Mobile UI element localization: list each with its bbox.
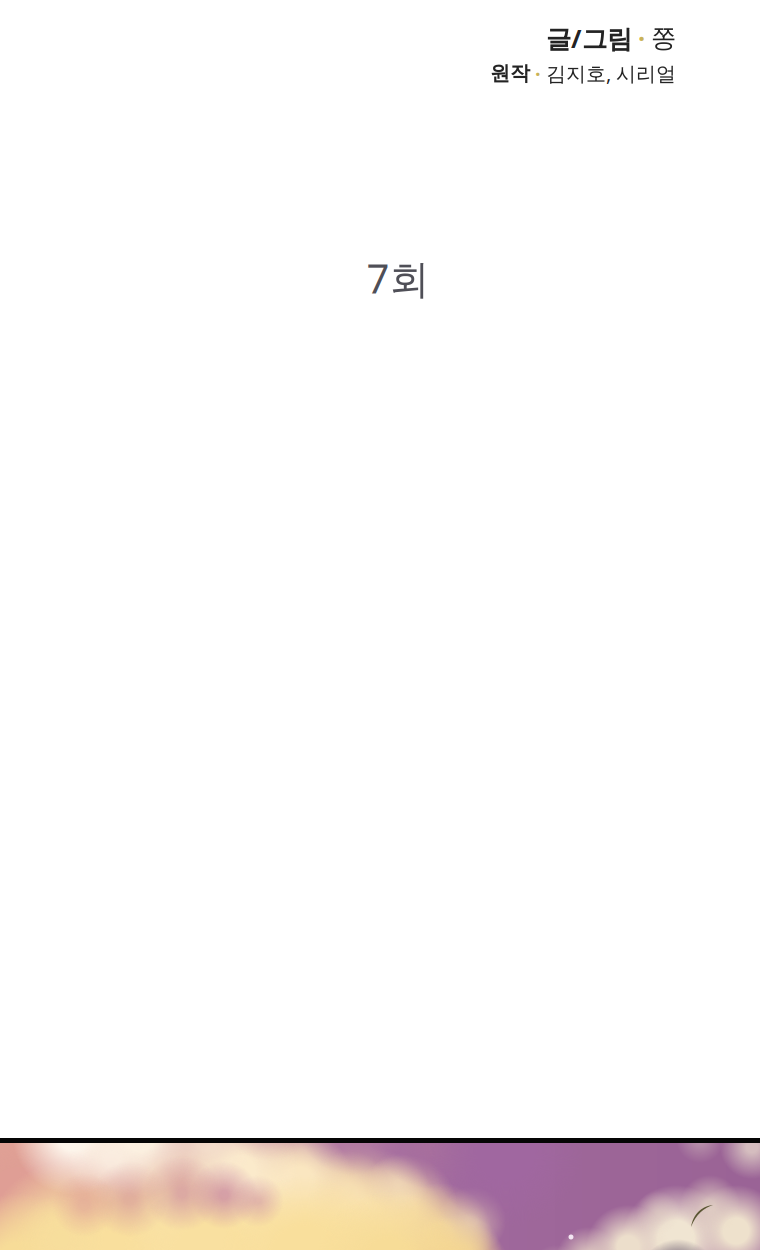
staticText: 7회 <box>366 251 429 304</box>
staticText: 글/그림 <box>546 21 632 55</box>
staticText: · <box>535 60 541 87</box>
staticText: · <box>638 21 645 55</box>
staticText: 김지호, 시리얼 <box>546 60 676 87</box>
staticText: 원작 <box>490 61 530 86</box>
staticText: 쫑 <box>651 23 676 54</box>
